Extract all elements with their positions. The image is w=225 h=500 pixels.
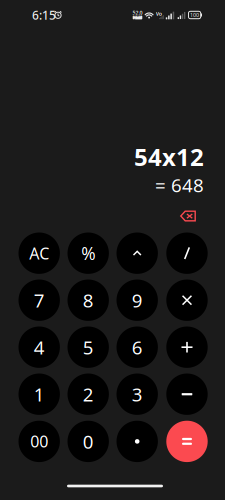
staticText: 6 xyxy=(132,335,143,360)
staticText: 00 xyxy=(30,431,48,452)
staticText: KB/S xyxy=(133,12,141,23)
button[interactable]: 6 xyxy=(116,326,158,368)
button[interactable]: 8 xyxy=(67,279,109,321)
staticText: % xyxy=(81,242,95,265)
staticText: 0 xyxy=(83,429,94,454)
button[interactable]: 5 xyxy=(67,326,109,368)
staticText: 8 xyxy=(83,288,94,313)
staticText: 5 xyxy=(83,335,94,360)
staticText: 4 xyxy=(34,335,45,360)
button[interactable]: 54x12 xyxy=(34,141,204,197)
button[interactable]: Add xyxy=(166,326,208,368)
button[interactable]: Delete xyxy=(173,204,203,228)
staticText: 54x12 xyxy=(134,141,204,173)
staticText: 7 xyxy=(34,288,45,313)
button[interactable]: % xyxy=(67,232,109,274)
button[interactable]: AC xyxy=(18,232,60,274)
button[interactable]: Decimal point xyxy=(116,421,158,462)
staticText: 2 xyxy=(83,382,94,407)
button[interactable]: 3 xyxy=(116,373,158,415)
staticText: 100 xyxy=(190,11,199,19)
staticText: 1 xyxy=(34,382,45,407)
button[interactable]: 2 xyxy=(67,373,109,415)
button[interactable]: Subtract xyxy=(166,373,208,415)
staticText: Vo xyxy=(156,10,162,17)
button[interactable]: Divide xyxy=(166,232,208,274)
button[interactable]: 00 xyxy=(18,421,60,462)
button[interactable]: 0 xyxy=(67,421,109,462)
button[interactable]: 9 xyxy=(116,279,158,321)
staticText: AC xyxy=(29,243,49,264)
staticText: 9 xyxy=(132,288,143,313)
staticText: 6:15 xyxy=(32,7,56,23)
button[interactable]: 7 xyxy=(18,279,60,321)
staticText: = 648 xyxy=(155,172,204,197)
staticText: 3 xyxy=(132,382,143,407)
button[interactable]: Equals xyxy=(166,421,208,462)
button[interactable]: 4 xyxy=(18,326,60,368)
button[interactable]: 1 xyxy=(18,373,60,415)
button[interactable]: Multiply xyxy=(166,279,208,321)
staticText: 52.0 xyxy=(132,9,142,16)
button[interactable]: Power xyxy=(116,232,158,274)
